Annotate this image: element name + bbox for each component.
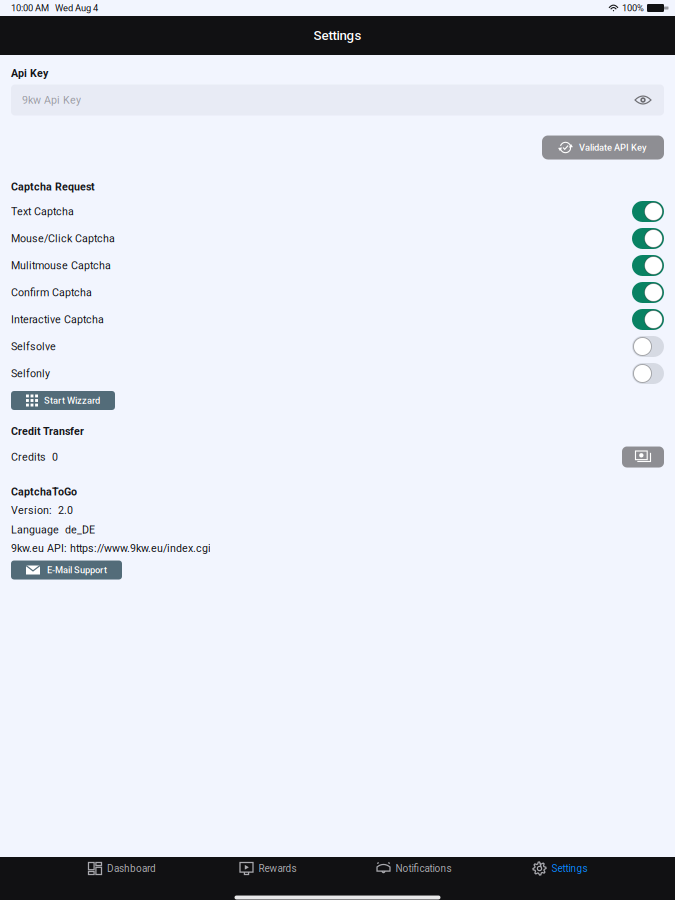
- staticText: Rewards: [258, 863, 296, 874]
- staticText: Version: 2.0: [11, 504, 73, 516]
- staticText: Credits 0: [11, 451, 58, 463]
- staticText: Text Captcha: [11, 205, 74, 218]
- button[interactable]: Rewards: [195, 853, 341, 883]
- staticText: Selfsolve: [11, 340, 56, 353]
- staticText: CaptchaToGo: [11, 485, 77, 498]
- staticText: Interactive Captcha: [11, 313, 104, 326]
- staticText: Validate API Key: [579, 142, 647, 153]
- staticText: 9kw Api Key: [22, 94, 81, 106]
- staticText: Captcha Request: [11, 180, 95, 193]
- staticText: Dashboard: [107, 863, 156, 874]
- button[interactable]: Notifications: [341, 853, 487, 883]
- button[interactable]: E-Mail Support: [11, 560, 122, 579]
- staticText: Settings: [551, 863, 587, 874]
- staticText: E-Mail Support: [47, 564, 107, 575]
- staticText: Start Wizzard: [44, 395, 100, 406]
- button[interactable]: Settings: [487, 853, 633, 883]
- staticText: Wed Aug 4: [49, 2, 98, 13]
- staticText: 10:00 AM: [11, 2, 49, 13]
- staticText: Mouse/Click Captcha: [11, 232, 115, 245]
- staticText: Selfonly: [11, 367, 50, 380]
- staticText: Credit Transfer: [11, 425, 84, 437]
- staticText: Confirm Captcha: [11, 286, 92, 299]
- button[interactable]: Transfer credits: [622, 446, 664, 467]
- staticText: Api Key: [11, 67, 48, 79]
- staticText: Mulitmouse Captcha: [11, 259, 111, 272]
- staticText: Language de_DE: [11, 523, 95, 536]
- staticText: 100%: [622, 2, 644, 13]
- button[interactable]: Show API key: [633, 92, 653, 108]
- button[interactable]: Start Wizzard: [11, 391, 115, 410]
- staticText: Settings: [313, 28, 361, 43]
- button[interactable]: Validate API Key: [542, 135, 664, 159]
- button[interactable]: Dashboard: [49, 853, 195, 883]
- staticText: 9kw.eu API: https://www.9kw.eu/index.cgi: [11, 542, 211, 554]
- staticText: Notifications: [395, 863, 451, 874]
